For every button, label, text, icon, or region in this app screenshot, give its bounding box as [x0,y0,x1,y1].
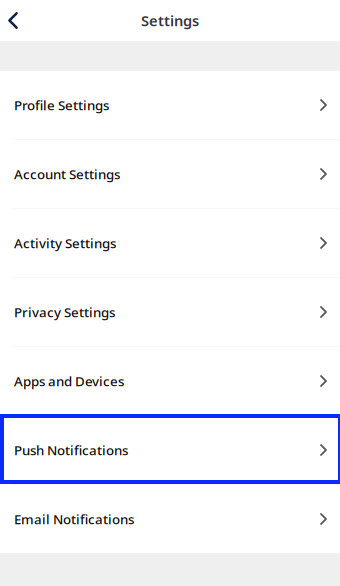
button[interactable]: Account Settings [0,140,340,208]
staticText: Privacy Settings [14,303,115,321]
staticText: Profile Settings [14,96,109,114]
staticText: Account Settings [14,165,120,183]
button[interactable]: Privacy Settings [0,278,340,346]
staticText: Push Notifications [14,441,128,459]
staticText: Apps and Devices [14,372,124,390]
button[interactable]: Activity Settings [0,209,340,277]
staticText: Activity Settings [14,234,116,252]
button[interactable]: Email Notifications [0,485,340,553]
button[interactable]: Apps and Devices [0,347,340,415]
button[interactable]: Push Notifications [0,416,340,484]
staticText: Settings [141,11,199,30]
button[interactable]: Profile Settings [0,71,340,139]
staticText: Email Notifications [14,510,134,528]
button[interactable]: Back [0,0,25,41]
